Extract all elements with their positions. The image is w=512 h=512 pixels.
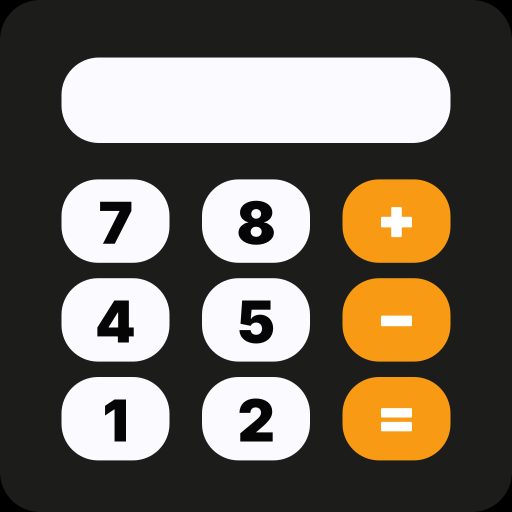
staticText: 2 [237, 385, 274, 455]
button[interactable]: 2 [202, 377, 310, 460]
button[interactable]: 4 [61, 278, 169, 362]
staticText: 7 [98, 188, 132, 258]
button[interactable]: Add [342, 179, 450, 263]
button[interactable]: Subtract [342, 278, 450, 362]
staticText: 1 [102, 385, 128, 455]
button[interactable]: 8 [202, 179, 310, 263]
button[interactable]: 7 [61, 179, 169, 263]
button[interactable]: 5 [202, 278, 310, 362]
staticText: 4 [95, 286, 136, 357]
button[interactable]: 1 [61, 377, 169, 460]
button[interactable]: Equals [342, 377, 450, 460]
staticText: 5 [236, 286, 275, 357]
staticText: 8 [236, 188, 275, 258]
